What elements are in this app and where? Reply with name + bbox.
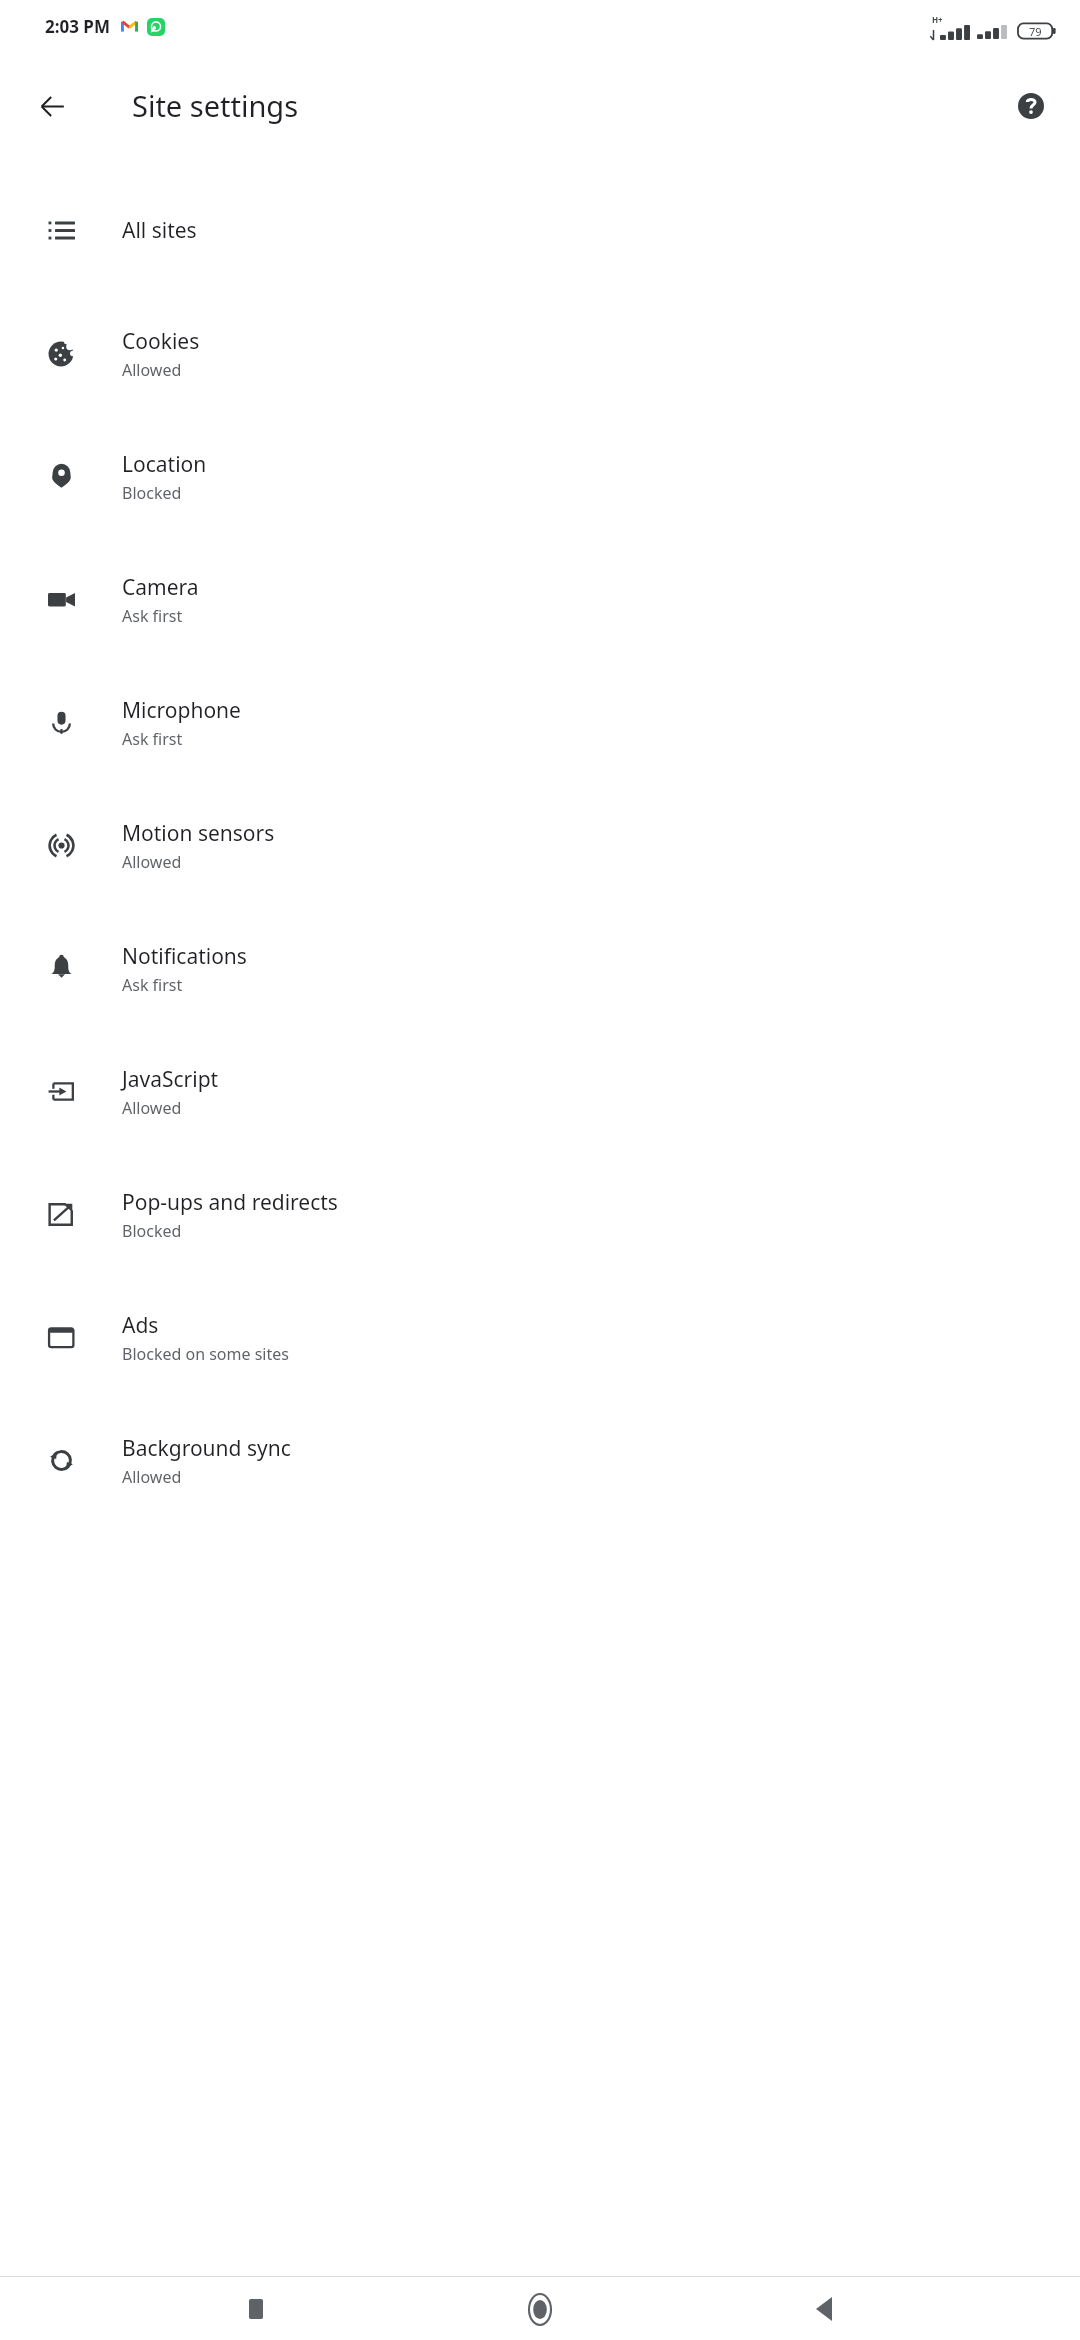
staticText: Allowed [122,851,182,873]
staticText: H+ [932,14,943,25]
button[interactable]: Camera [0,538,1080,661]
button[interactable]: Notifications [0,907,1080,1030]
button[interactable]: Location [0,415,1080,538]
staticText: Motion sensors [122,819,275,848]
staticText: Ask first [122,605,183,627]
staticText: All sites [122,216,197,245]
staticText: Microphone [122,696,241,725]
button[interactable]: Cookies [0,292,1080,415]
button[interactable]: Microphone [0,661,1080,784]
staticText: Allowed [122,1466,182,1488]
button[interactable]: Motion sensors [0,784,1080,907]
button[interactable]: All sites [0,169,1080,292]
staticText: Allowed [122,1097,182,1119]
staticText: Ads [122,1311,159,1340]
button[interactable]: Back [26,80,78,132]
staticText: Blocked [122,1220,182,1242]
button[interactable]: Recents [228,2281,284,2337]
staticText: Blocked [122,482,182,504]
staticText: Location [122,450,207,479]
staticText: Notifications [122,942,247,971]
staticText: Site settings [132,86,299,125]
button[interactable]: Help [1005,80,1057,132]
button[interactable]: Pop-ups and redirects [0,1153,1080,1276]
staticText: 2:03 PM [45,15,110,38]
button[interactable]: Ads [0,1276,1080,1399]
staticText: Ask first [122,974,183,996]
staticText: Cookies [122,327,200,356]
staticText: Blocked on some sites [122,1343,289,1365]
button[interactable]: Background sync [0,1399,1080,1522]
staticText: Allowed [122,359,182,381]
button[interactable]: Home [512,2281,568,2337]
staticText: Ask first [122,728,183,750]
staticText: Background sync [122,1434,291,1463]
staticText: 79 [1029,24,1042,39]
button[interactable]: Back [796,2281,852,2337]
staticText: Camera [122,573,199,602]
staticText: Pop-ups and redirects [122,1188,338,1217]
staticText: JavaScript [122,1065,219,1094]
button[interactable]: JavaScript [0,1030,1080,1153]
